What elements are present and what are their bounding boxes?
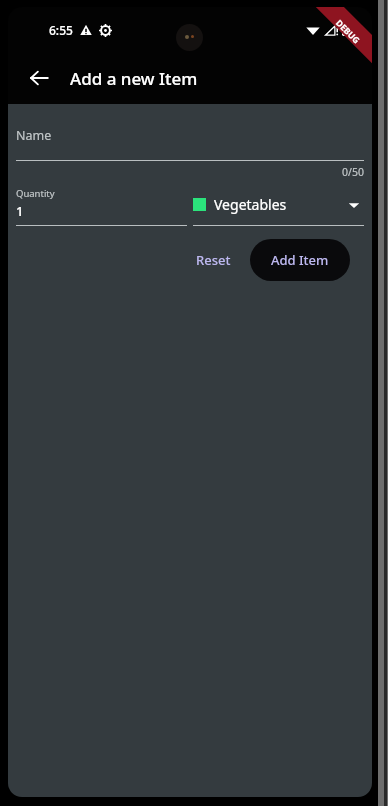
button[interactable]: Name — [16, 127, 364, 161]
staticText: Add Item — [271, 251, 329, 269]
staticText: 1 — [16, 202, 24, 220]
button[interactable]: Category: Vegetables — [193, 187, 364, 226]
button[interactable]: Quantity — [16, 187, 187, 226]
button[interactable]: Reset — [182, 242, 245, 278]
staticText: Quantity — [16, 187, 55, 200]
staticText: Vegetables — [214, 195, 287, 214]
button[interactable]: Add Item — [250, 239, 350, 281]
staticText: Add a new Item — [70, 67, 198, 90]
staticText: 0/50 — [342, 165, 364, 179]
staticText: Reset — [196, 251, 231, 269]
staticText: 6:55 — [49, 22, 73, 38]
button[interactable]: Back — [17, 56, 61, 100]
staticText: Name — [16, 127, 52, 144]
staticText: DEBUG — [333, 17, 363, 47]
